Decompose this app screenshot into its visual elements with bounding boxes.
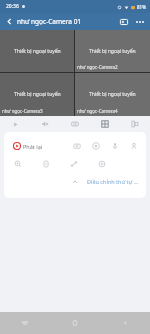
button[interactable]: Mute bbox=[30, 116, 60, 132]
button[interactable]: Zoom bbox=[4, 155, 32, 173]
staticText: Thiết bị ngoại tuyến bbox=[89, 48, 136, 55]
button[interactable]: Settings bbox=[88, 155, 116, 173]
staticText: Điều chỉnh thứ tự ... bbox=[87, 178, 139, 185]
staticText: như ngọc-Camera 01 bbox=[17, 17, 82, 26]
button[interactable]: Add camera bbox=[117, 15, 130, 28]
button[interactable]: Record bbox=[86, 137, 105, 155]
staticText: 81% bbox=[137, 4, 146, 10]
button[interactable]: Cloud storage bbox=[32, 155, 60, 173]
staticText: Phát lại bbox=[23, 143, 43, 150]
button[interactable]: Share bbox=[60, 155, 88, 173]
button[interactable]: Layout grid bbox=[90, 116, 120, 132]
button[interactable]: Phát lại bbox=[9, 139, 47, 153]
button[interactable]: Play bbox=[0, 116, 30, 132]
button[interactable]: Thiết bị ngoại tuyến bbox=[0, 30, 74, 72]
button[interactable]: Back bbox=[3, 15, 16, 28]
button[interactable]: Thiết bị ngoại tuyến bbox=[0, 73, 74, 116]
button[interactable]: Split bbox=[120, 116, 150, 132]
button[interactable]: Stream bbox=[60, 116, 90, 132]
button[interactable]: Talk bbox=[105, 137, 124, 155]
staticText: Thiết bị ngoại tuyến bbox=[14, 48, 61, 55]
button[interactable]: More options bbox=[133, 15, 146, 28]
button[interactable]: Thiết bị ngoại tuyến bbox=[75, 73, 150, 116]
staticText: như ngọc-Camera2 bbox=[77, 64, 118, 70]
button[interactable]: Person detection bbox=[124, 137, 143, 155]
staticText: như ngọc-Camera4 bbox=[77, 108, 118, 114]
button[interactable]: Điều chỉnh thứ tự ... bbox=[69, 176, 142, 187]
staticText: Thiết bị ngoại tuyến bbox=[89, 91, 136, 98]
button[interactable]: Screenshot bbox=[67, 137, 86, 155]
staticText: như ngọc-Camera3 bbox=[2, 108, 43, 114]
button[interactable]: Thiết bị ngoại tuyến bbox=[75, 30, 150, 72]
staticText: 20:36 bbox=[6, 3, 19, 10]
staticText: Thiết bị ngoại tuyến bbox=[14, 91, 61, 98]
